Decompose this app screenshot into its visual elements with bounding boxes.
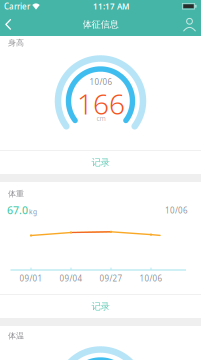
- staticText: 记录: [91, 301, 109, 312]
- staticText: 10/06: [89, 76, 112, 87]
- staticText: 身高: [8, 38, 24, 48]
- staticText: 09/01: [19, 273, 42, 284]
- staticText: 10/06: [165, 205, 188, 216]
- staticText: cm: [96, 114, 105, 123]
- staticText: 11:17 AM: [93, 1, 129, 12]
- button[interactable]: 记录: [0, 295, 201, 318]
- staticText: kg: [29, 207, 37, 216]
- button[interactable]: 记录: [0, 151, 201, 174]
- staticText: 体温: [8, 331, 24, 341]
- staticText: 67.0: [7, 203, 28, 217]
- staticText: 09/27: [99, 273, 122, 284]
- staticText: 166: [77, 85, 125, 122]
- staticText: 记录: [91, 157, 109, 168]
- button[interactable]: Profile: [174, 13, 201, 36]
- staticText: Carrier: [4, 1, 30, 12]
- staticText: 体重: [8, 189, 24, 199]
- staticText: 10/06: [139, 273, 162, 284]
- button[interactable]: Back: [0, 13, 27, 36]
- staticText: 体征信息: [82, 19, 118, 30]
- staticText: 09/04: [59, 273, 82, 284]
